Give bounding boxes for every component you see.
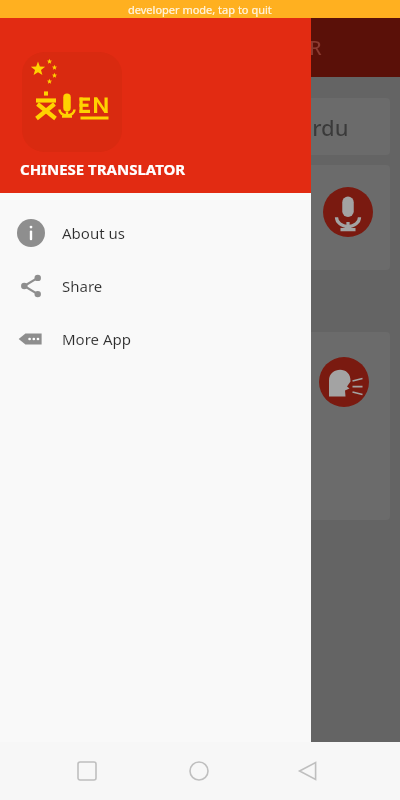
staticText: About us: [62, 223, 125, 243]
button[interactable]: Play translation: [230, 332, 390, 520]
staticText: Share: [62, 276, 103, 296]
staticText: More App: [62, 329, 131, 349]
button[interactable]: Urdu: [230, 98, 390, 155]
staticText: R: [309, 34, 322, 61]
button[interactable]: developer mode, tap to quit: [0, 0, 400, 18]
staticText: Urdu: [296, 112, 349, 142]
button[interactable]: Back: [298, 761, 318, 781]
button[interactable]: Recent apps: [78, 762, 96, 780]
button[interactable]: Home: [189, 761, 209, 781]
button[interactable]: About us: [0, 206, 311, 259]
staticText: developer mode, tap to quit: [128, 2, 272, 17]
staticText: CHINESE TRANSLATOR: [20, 159, 186, 179]
button[interactable]: More App: [0, 312, 311, 365]
button[interactable]: Share: [0, 259, 311, 312]
button[interactable]: Speak to translate: [230, 165, 390, 270]
